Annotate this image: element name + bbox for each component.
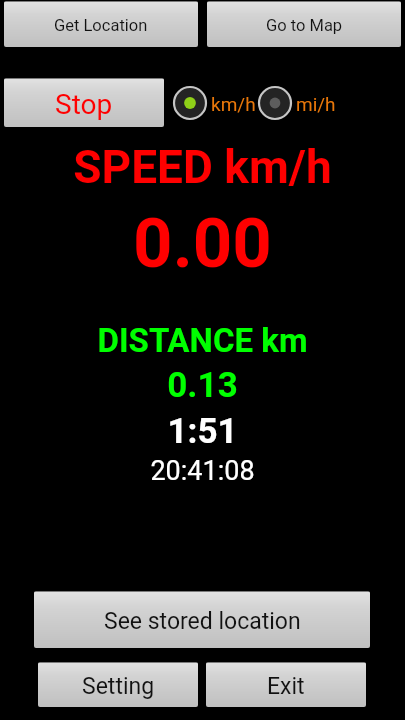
button[interactable]: Exit bbox=[206, 662, 366, 707]
staticText: mi/h bbox=[296, 93, 336, 115]
button[interactable]: mi/h bbox=[258, 86, 292, 120]
staticText: Go to Map bbox=[266, 16, 343, 35]
staticText: DISTANCE km bbox=[0, 321, 405, 360]
staticText: See stored location bbox=[104, 608, 301, 635]
button[interactable]: Stop bbox=[4, 78, 164, 127]
button[interactable]: See stored location bbox=[34, 591, 370, 648]
staticText: Setting bbox=[82, 673, 155, 700]
button[interactable]: Go to Map bbox=[207, 1, 401, 47]
staticText: 1:51 bbox=[0, 411, 405, 452]
staticText: Get Location bbox=[54, 16, 148, 35]
button[interactable]: km/h bbox=[173, 86, 207, 120]
button[interactable]: Setting bbox=[38, 662, 198, 707]
button[interactable]: Get Location bbox=[4, 1, 198, 47]
staticText: 0.13 bbox=[0, 365, 405, 406]
staticText: SPEED km/h bbox=[0, 140, 405, 194]
staticText: km/h bbox=[211, 93, 256, 115]
staticText: Stop bbox=[55, 88, 113, 121]
staticText: 0.00 bbox=[0, 203, 405, 284]
staticText: Exit bbox=[267, 673, 305, 700]
staticText: 20:41:08 bbox=[0, 455, 405, 487]
